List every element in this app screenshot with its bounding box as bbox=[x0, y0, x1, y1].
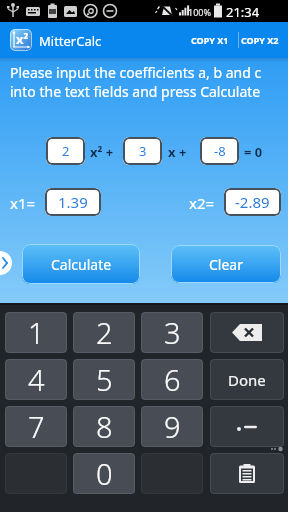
button[interactable]: 1 bbox=[5, 312, 67, 353]
staticText: 2 bbox=[96, 313, 113, 352]
staticText: Done bbox=[228, 370, 266, 390]
staticText: x2= bbox=[189, 193, 215, 213]
staticText: -8 bbox=[214, 142, 226, 160]
staticText: 9 bbox=[164, 407, 181, 446]
button[interactable]: 6 bbox=[141, 359, 203, 400]
button[interactable]: 7 bbox=[5, 406, 67, 447]
staticText: MitterCalc bbox=[39, 32, 102, 50]
button[interactable]: 5 bbox=[73, 359, 135, 400]
staticText: -2.89 bbox=[235, 192, 270, 212]
button[interactable] bbox=[210, 453, 284, 494]
button[interactable]: Done bbox=[210, 359, 284, 400]
staticText: Clear bbox=[209, 255, 243, 274]
staticText: 1.39 bbox=[58, 192, 88, 212]
staticText: 3 bbox=[139, 142, 147, 160]
button[interactable]: -2.89 bbox=[224, 188, 281, 216]
button[interactable]: 2 bbox=[73, 312, 135, 353]
staticText: 8 bbox=[96, 407, 113, 446]
button[interactable]: 2 bbox=[46, 137, 85, 165]
button[interactable]: COPY X2 bbox=[234, 30, 286, 50]
staticText: x² + bbox=[90, 143, 114, 161]
button[interactable]: -8 bbox=[200, 137, 239, 165]
button[interactable]: 3 bbox=[141, 312, 203, 353]
button[interactable]: Clear bbox=[171, 245, 281, 283]
staticText: 0 bbox=[96, 454, 113, 493]
staticText: COPY X1 bbox=[191, 34, 229, 46]
staticText: x1= bbox=[10, 193, 36, 213]
staticText: COPY X2 bbox=[241, 34, 279, 46]
button[interactable]: 8 bbox=[73, 406, 135, 447]
button[interactable]: 9 bbox=[141, 406, 203, 447]
staticText: x + bbox=[168, 143, 187, 161]
button[interactable]: COPY X1 bbox=[184, 30, 236, 50]
button[interactable]: Calculate bbox=[22, 244, 140, 284]
staticText: = 0 bbox=[244, 143, 263, 161]
button[interactable]: 1.39 bbox=[45, 188, 101, 216]
staticText: Please input the coefficients a, b and c… bbox=[10, 63, 262, 101]
staticText: 4 bbox=[28, 360, 45, 399]
staticText: 21:34 bbox=[226, 3, 260, 21]
staticText: 6 bbox=[164, 360, 181, 399]
button[interactable]: 4 bbox=[5, 359, 67, 400]
button[interactable]: 0 bbox=[73, 453, 135, 494]
staticText: Calculate bbox=[51, 255, 112, 274]
staticText: 2 bbox=[62, 142, 70, 160]
staticText: 3 bbox=[164, 313, 181, 352]
staticText: 1 bbox=[28, 313, 45, 352]
button[interactable] bbox=[0, 251, 12, 275]
staticText: 5 bbox=[96, 360, 113, 399]
staticText: 7 bbox=[28, 407, 45, 446]
button[interactable] bbox=[210, 406, 284, 447]
button[interactable] bbox=[210, 312, 284, 353]
staticText: 100% bbox=[188, 6, 211, 18]
staticText: x² bbox=[16, 30, 29, 48]
button[interactable]: 3 bbox=[123, 137, 162, 165]
